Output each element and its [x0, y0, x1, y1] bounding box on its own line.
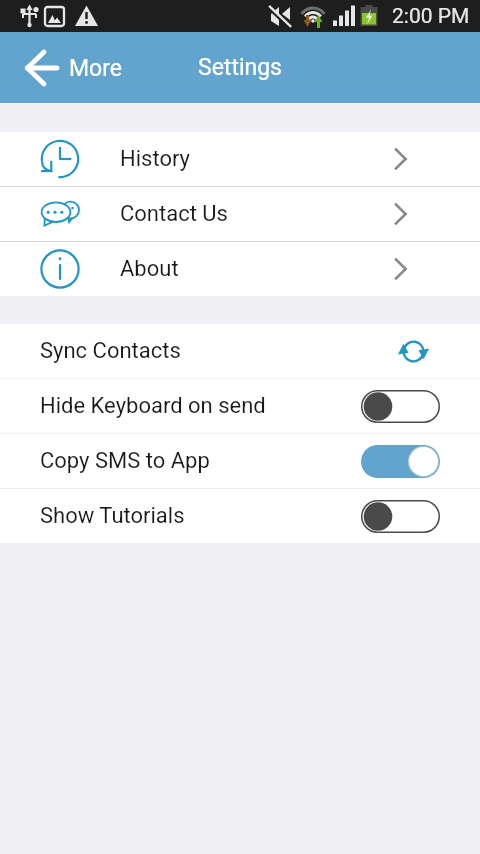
button[interactable]: Copy SMS to App — [0, 434, 480, 488]
button[interactable]: Contact Us — [0, 187, 480, 241]
staticText: About — [120, 256, 179, 282]
other: Back — [25, 51, 57, 85]
staticText: Hide Keyboard on send — [40, 393, 266, 419]
staticText: Copy SMS to App — [40, 448, 210, 474]
button[interactable]: Hide Keyboard on send — [0, 379, 480, 433]
button[interactable]: Show Tutorials — [0, 489, 480, 543]
button[interactable]: About — [0, 242, 480, 296]
other: Sync Contacts — [399, 337, 428, 366]
button[interactable]: Sync Contacts — [0, 324, 480, 378]
button[interactable]: History — [0, 132, 480, 186]
staticText: Sync Contacts — [40, 338, 181, 364]
staticText: 2:00 PM — [392, 4, 470, 29]
staticText: Show Tutorials — [40, 503, 185, 529]
staticText: History — [120, 146, 190, 172]
staticText: More — [69, 55, 122, 82]
button[interactable]: Back — [0, 51, 134, 85]
staticText: Contact Us — [120, 201, 228, 227]
staticText: Settings — [198, 54, 282, 81]
